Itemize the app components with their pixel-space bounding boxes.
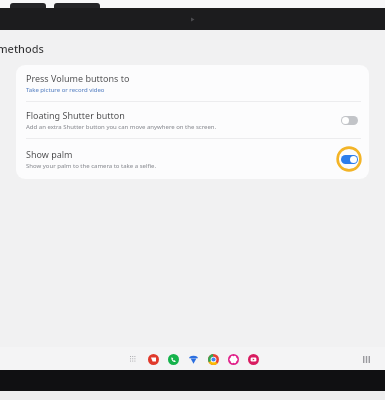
staticText: Show palm: [26, 148, 73, 160]
button[interactable]: Floating Shutter button, off: [336, 110, 362, 130]
button[interactable]: Show palm, on: [336, 146, 362, 172]
button[interactable]: Messages: [186, 352, 200, 366]
button[interactable]: Chrome: [206, 352, 220, 366]
button[interactable]: Floating Shutter button: [16, 102, 369, 138]
button[interactable]: Show palm: [16, 139, 369, 179]
staticText: Floating Shutter button: [26, 109, 125, 121]
staticText: Show your palm to the camera to take a s…: [26, 162, 157, 170]
button[interactable]: Press Volume buttons to: [16, 65, 369, 101]
staticText: Add an extra Shutter button you can move…: [26, 123, 217, 131]
button[interactable]: Photos: [226, 352, 240, 366]
staticText: Take picture or record video: [26, 86, 105, 94]
staticText: Shooting methods: [0, 41, 44, 56]
button[interactable]: Recents: [359, 352, 373, 366]
button[interactable]: All apps: [126, 352, 140, 366]
button[interactable]: YouTube: [246, 352, 260, 366]
button[interactable]: Gmail: [146, 352, 160, 366]
button[interactable]: Phone: [166, 352, 180, 366]
staticText: Press Volume buttons to: [26, 72, 130, 84]
